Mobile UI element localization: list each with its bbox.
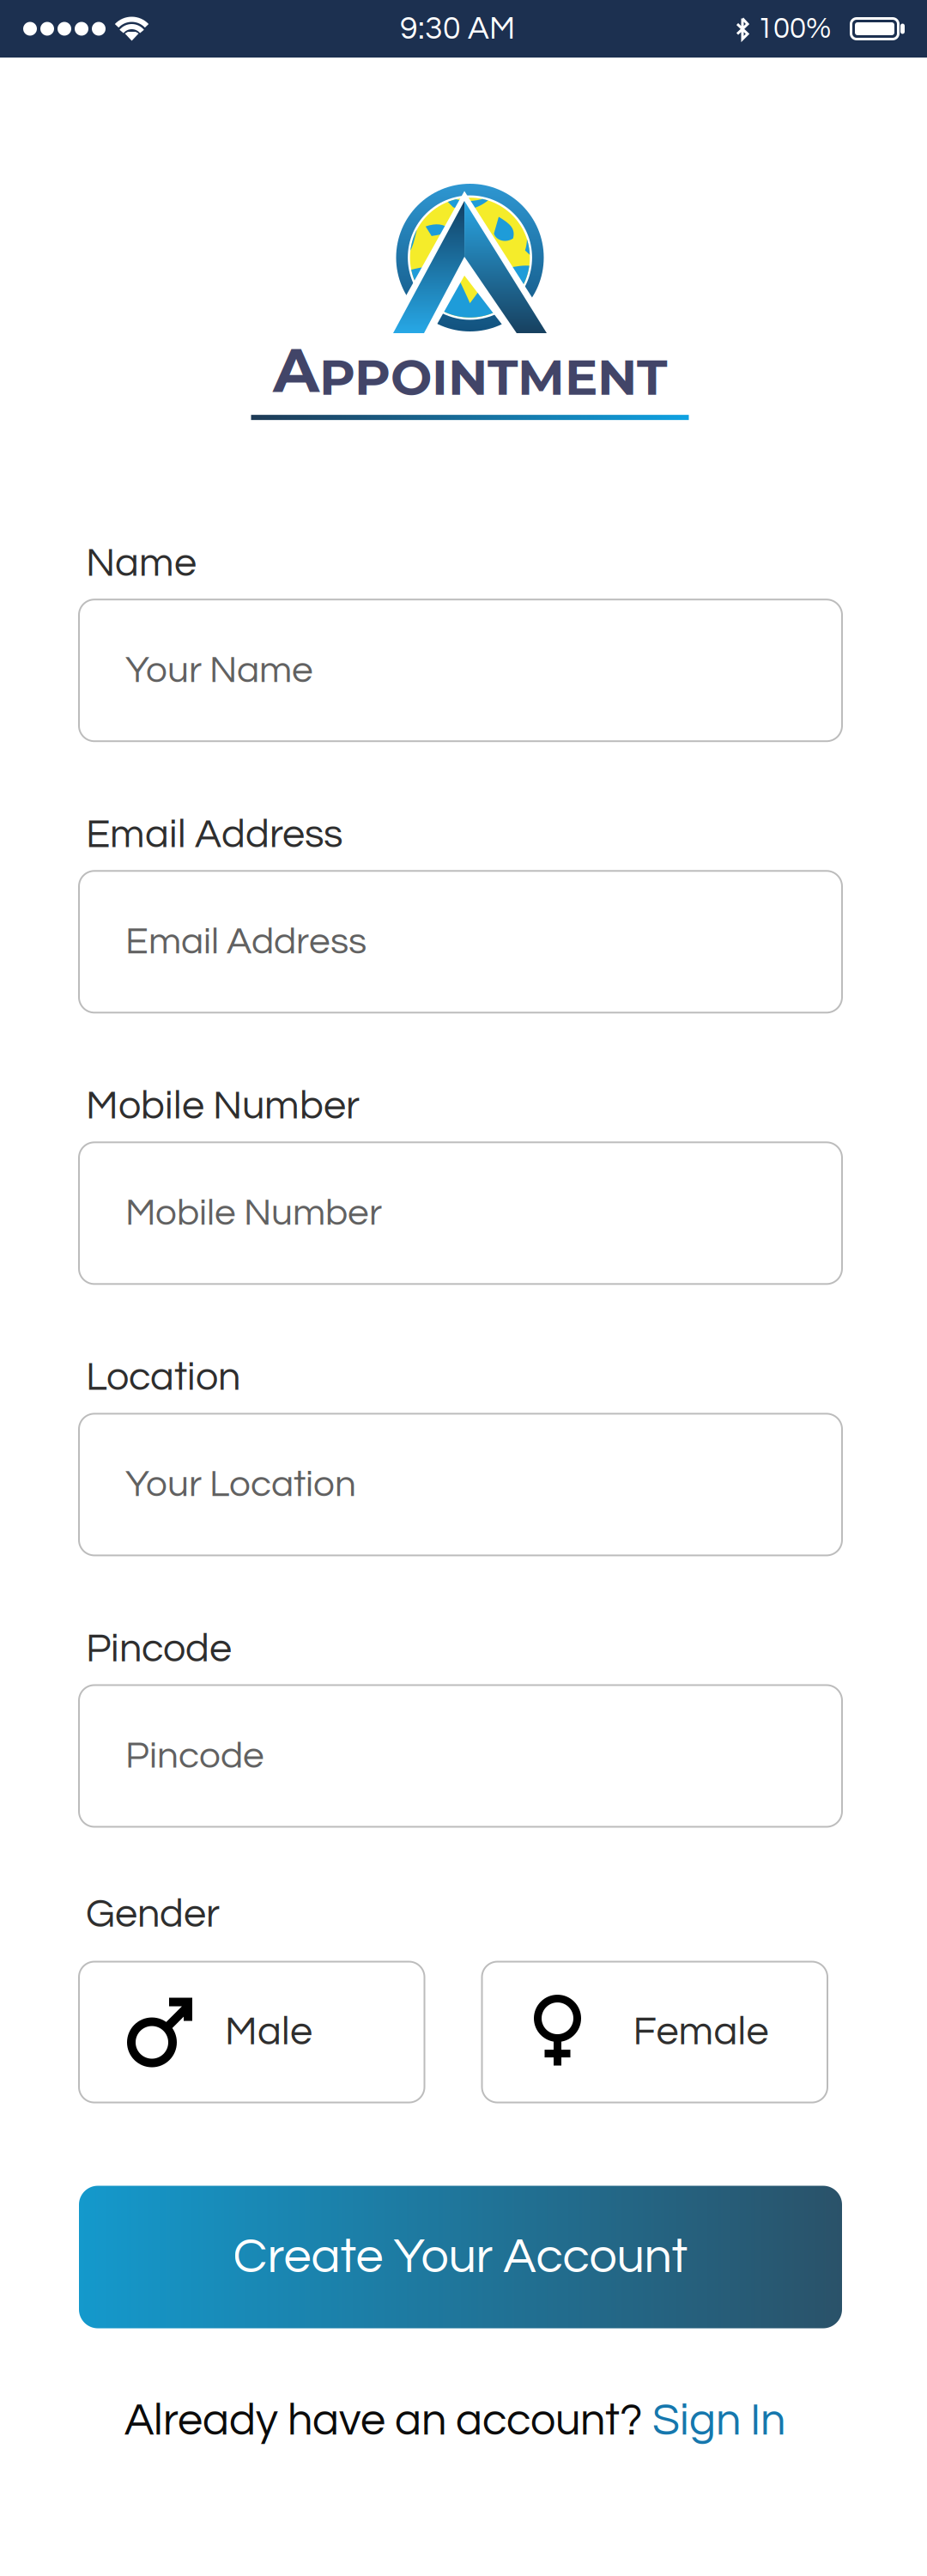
button[interactable]: Your Name	[79, 600, 842, 741]
staticText: PPOINTMENT	[319, 347, 667, 407]
staticText: Mobile Number	[86, 1086, 360, 1127]
staticText: Sign In	[652, 2398, 785, 2444]
staticText: 9:30 AM	[400, 12, 515, 45]
staticText: Pincode	[86, 1628, 232, 1670]
button[interactable]: Mobile Number	[79, 1142, 842, 1284]
button[interactable]: Your Location	[79, 1414, 842, 1555]
button[interactable]: Pincode	[79, 1685, 842, 1827]
staticText: 100%	[757, 13, 831, 44]
button[interactable]: Email Address	[79, 871, 842, 1013]
button[interactable]: Sign In	[652, 2398, 785, 2444]
staticText: Mobile Number	[125, 1194, 382, 1233]
staticText: Pincode	[125, 1736, 264, 1775]
button[interactable]: Female	[482, 1962, 827, 2102]
staticText: Gender	[86, 1894, 220, 1935]
staticText: Email Address	[125, 922, 367, 961]
staticText: Name	[86, 543, 197, 584]
staticText: Already have an account?	[124, 2398, 652, 2444]
staticText: Female	[633, 2011, 769, 2053]
staticText: A	[273, 333, 319, 407]
button[interactable]: Create Your Account	[79, 2186, 842, 2328]
staticText: Email Address	[86, 814, 342, 855]
button[interactable]: Male	[79, 1962, 424, 2102]
staticText: Male	[225, 2011, 312, 2053]
staticText: Your Location	[125, 1465, 356, 1504]
staticText: Create Your Account	[233, 2232, 688, 2282]
staticText: Your Name	[125, 651, 313, 690]
staticText: Location	[86, 1357, 240, 1398]
